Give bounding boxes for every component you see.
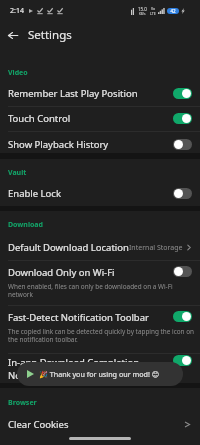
- button[interactable]: Remember Last Play Position: [0, 82, 200, 107]
- staticText: Enable Lock: [8, 187, 61, 200]
- staticText: Browser: [8, 398, 37, 408]
- staticText: Download: [8, 220, 43, 230]
- staticText: Internal Storage: [129, 243, 183, 253]
- staticText: KB/s: [139, 12, 146, 16]
- staticText: The copied link can be detected quickly …: [8, 327, 195, 344]
- staticText: When enabled, files can only be download…: [8, 282, 182, 299]
- staticText: Vault: [8, 168, 27, 178]
- staticText: Touch Control: [8, 112, 71, 125]
- staticText: Show Playback History: [8, 138, 109, 151]
- staticText: Download Only on Wi-Fi: [8, 266, 115, 279]
- staticText: Vo: [151, 6, 156, 11]
- button[interactable]: Download Only on Wi-Fi: [0, 261, 200, 302]
- button[interactable]: Show Playback History: [0, 133, 200, 155]
- staticText: In-app Download Completion Notification: [8, 356, 155, 381]
- staticText: Settings: [28, 27, 72, 43]
- staticText: 42: [170, 8, 176, 14]
- button[interactable]: 🎉 Thank you for using our mod! 😊: [17, 362, 183, 386]
- staticText: 15.0: [138, 6, 147, 12]
- button[interactable]: Clear Cookies: [0, 412, 200, 437]
- button[interactable]: Default Download Location: [0, 235, 200, 260]
- button[interactable]: Enable Lock: [0, 182, 200, 207]
- staticText: Remember Last Play Position: [8, 87, 138, 100]
- staticText: Video: [8, 68, 28, 78]
- staticText: Default Download Location: [8, 241, 129, 254]
- staticText: 🎉 Thank you for using our mod! 😊: [39, 369, 160, 379]
- staticText: Clear Cookies: [8, 418, 69, 431]
- staticText: LTE: [150, 11, 156, 16]
- button[interactable]: Back: [0, 19, 26, 51]
- button[interactable]: Fast-Detect Notification Toolbar: [0, 306, 200, 350]
- button[interactable]: In-app Download Completion Notification: [0, 351, 200, 381]
- button[interactable]: Touch Control: [0, 107, 200, 132]
- staticText: Fast-Detect Notification Toolbar: [8, 311, 149, 324]
- staticText: 2:14: [10, 6, 24, 16]
